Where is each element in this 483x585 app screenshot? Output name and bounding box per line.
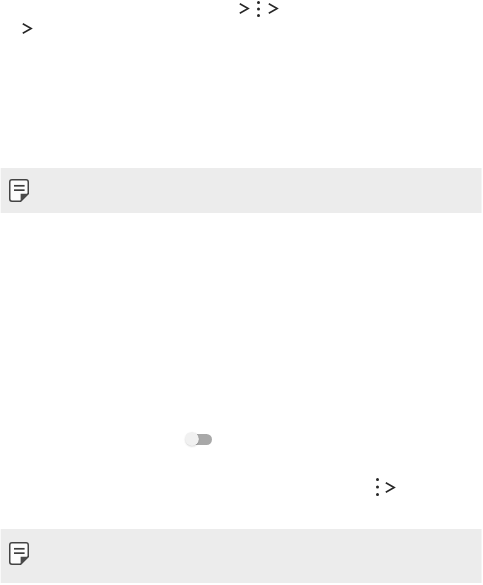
button[interactable]: More options — [246, 0, 270, 22]
button[interactable]: More options — [365, 472, 389, 501]
button[interactable]: Open — [378, 475, 402, 499]
button[interactable]: Open — [260, 0, 286, 20]
button[interactable]: Next — [231, 0, 257, 20]
button[interactable]: Expand — [15, 16, 39, 40]
button[interactable]: Note item — [0, 529, 483, 583]
button[interactable]: Note item — [0, 168, 483, 213]
button[interactable]: Toggle setting — [184, 432, 212, 446]
